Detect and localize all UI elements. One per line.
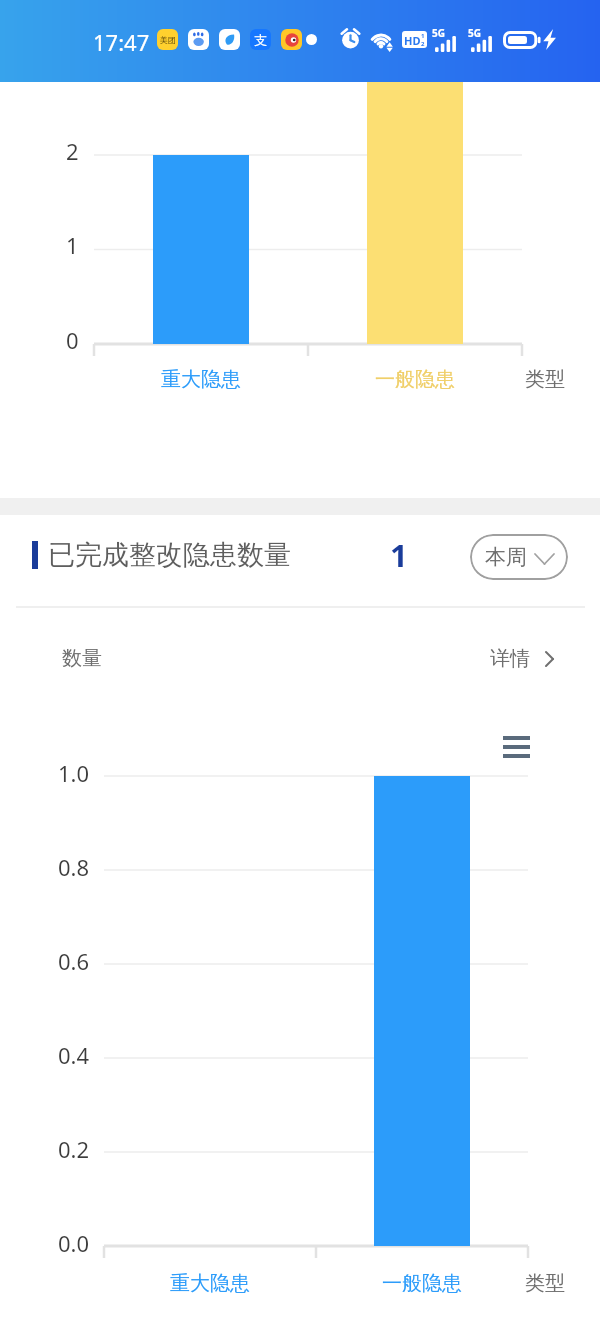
staticText: 一般隐患 bbox=[382, 1271, 462, 1296]
staticText: 5G bbox=[468, 26, 481, 40]
staticText: 0.6 bbox=[58, 946, 90, 976]
staticText: 类型 bbox=[525, 1271, 565, 1296]
button[interactable]: 本周 bbox=[470, 534, 568, 580]
button[interactable]: Chart menu bbox=[503, 736, 530, 758]
staticText: 重大隐患 bbox=[170, 1271, 250, 1296]
staticText: 数量 bbox=[62, 646, 102, 671]
staticText: 0 bbox=[66, 325, 79, 355]
staticText: 1.0 bbox=[58, 758, 90, 788]
staticText: 0.0 bbox=[58, 1228, 90, 1258]
other: Wi-Fi bbox=[369, 28, 393, 52]
button[interactable]: Completed rectification bar chart bbox=[0, 700, 600, 1300]
staticText: 重大隐患 bbox=[161, 367, 241, 392]
staticText: 17:47 bbox=[93, 27, 150, 57]
staticText: 0.8 bbox=[58, 852, 90, 882]
other: Alarm bbox=[340, 28, 361, 49]
staticText: 2 bbox=[421, 40, 425, 48]
staticText: 1 bbox=[390, 534, 408, 576]
staticText: 0.4 bbox=[58, 1040, 90, 1070]
staticText: 1 bbox=[421, 32, 425, 40]
button[interactable]: Hazard count bar chart bbox=[0, 82, 600, 498]
staticText: 一般隐患 bbox=[375, 367, 455, 392]
staticText: 5G bbox=[432, 26, 445, 40]
staticText: 本周 bbox=[485, 544, 527, 570]
staticText: 已完成整改隐患数量 bbox=[48, 538, 291, 572]
staticText: 美团 bbox=[160, 35, 176, 45]
staticText: 类型 bbox=[525, 367, 565, 392]
staticText: 1 bbox=[66, 230, 79, 260]
staticText: 支 bbox=[254, 32, 267, 48]
button[interactable]: 详情 bbox=[490, 634, 554, 683]
other: Battery bbox=[503, 31, 542, 49]
staticText: 详情 bbox=[490, 646, 530, 671]
staticText: HD bbox=[404, 33, 421, 48]
staticText: 2 bbox=[66, 136, 79, 166]
staticText: 0.2 bbox=[58, 1134, 90, 1164]
